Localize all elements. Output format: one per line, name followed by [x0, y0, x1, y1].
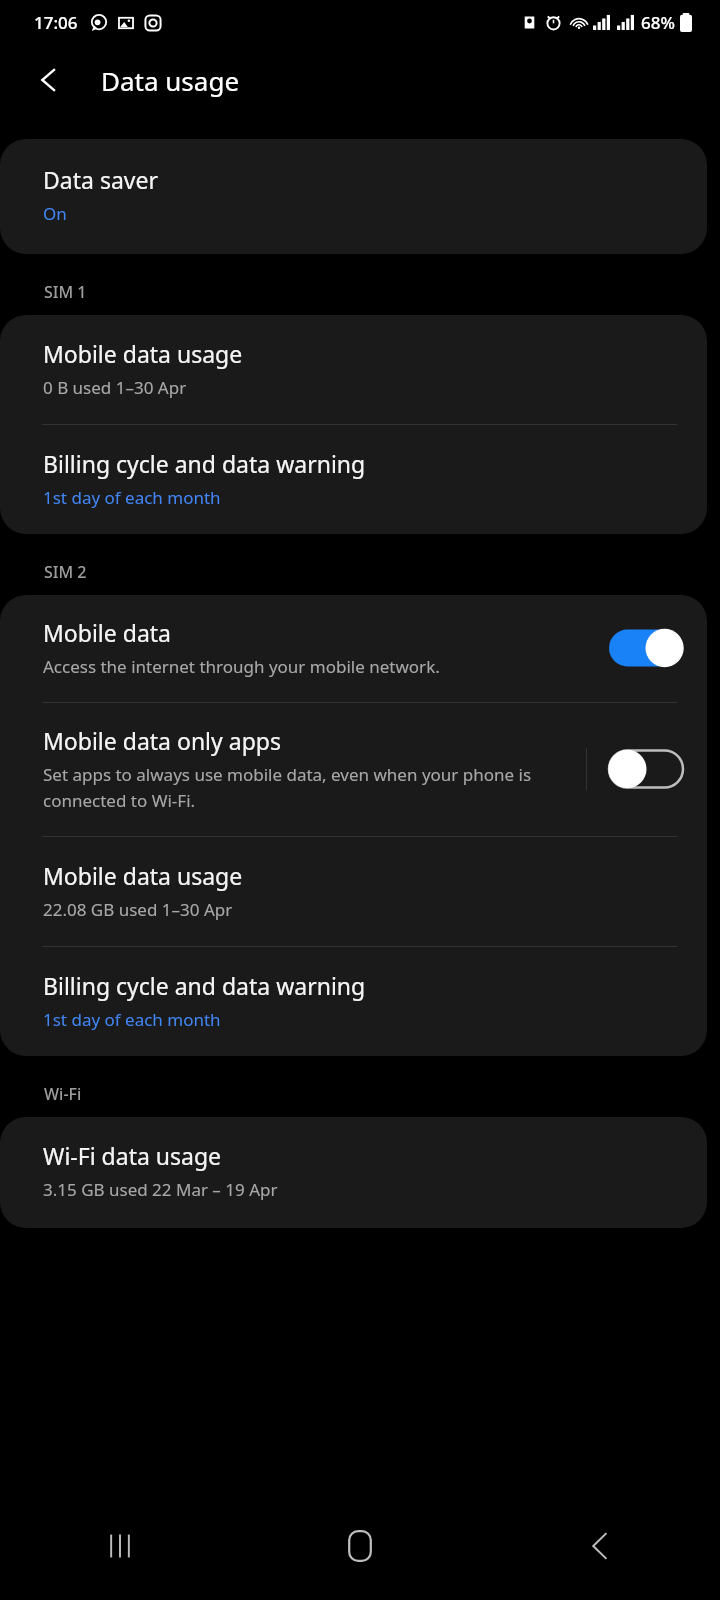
staticText: 17:06 — [34, 11, 78, 34]
staticText: 1st day of each month — [43, 1008, 221, 1031]
button[interactable]: Recents — [0, 1492, 240, 1600]
button[interactable]: Home — [240, 1492, 480, 1600]
staticText: On — [43, 202, 67, 225]
button[interactable]: Mobile data usage — [0, 315, 707, 424]
staticText: Wi-Fi — [44, 1083, 82, 1105]
button[interactable]: Mobile data usage — [0, 837, 707, 946]
staticText: SIM 1 — [44, 281, 87, 303]
staticText: Set apps to always use mobile data, even… — [43, 763, 570, 812]
staticText: Billing cycle and data warning — [43, 448, 366, 479]
staticText: 0 B used 1–30 Apr — [43, 376, 187, 399]
button[interactable]: Wi-Fi data usage — [0, 1117, 707, 1228]
staticText: Billing cycle and data warning — [43, 970, 366, 1001]
button[interactable]: Billing cycle and data warning — [0, 947, 707, 1056]
staticText: Data usage — [101, 63, 240, 98]
button[interactable]: Toggle off — [609, 746, 683, 792]
button[interactable]: Mobile data — [0, 595, 707, 702]
staticText: Access the internet through your mobile … — [43, 655, 440, 678]
button[interactable]: Billing cycle and data warning — [0, 425, 707, 534]
button[interactable]: Data saver — [0, 139, 707, 254]
staticText: 3.15 GB used 22 Mar – 19 Apr — [43, 1178, 278, 1201]
staticText: Mobile data usage — [43, 860, 243, 891]
staticText: 22.08 GB used 1–30 Apr — [43, 898, 233, 921]
staticText: SIM 2 — [44, 561, 87, 583]
staticText: Data saver — [43, 164, 158, 195]
button[interactable]: Back — [480, 1492, 720, 1600]
staticText: Mobile data — [43, 617, 171, 648]
button[interactable]: Toggle on — [609, 625, 683, 671]
staticText: Wi-Fi data usage — [43, 1140, 222, 1171]
button[interactable]: Mobile data only apps — [0, 703, 707, 836]
staticText: Mobile data usage — [43, 338, 243, 369]
button[interactable]: Back — [22, 53, 76, 107]
staticText: 68% — [641, 11, 675, 34]
staticText: 1st day of each month — [43, 486, 221, 509]
staticText: Mobile data only apps — [43, 725, 281, 756]
